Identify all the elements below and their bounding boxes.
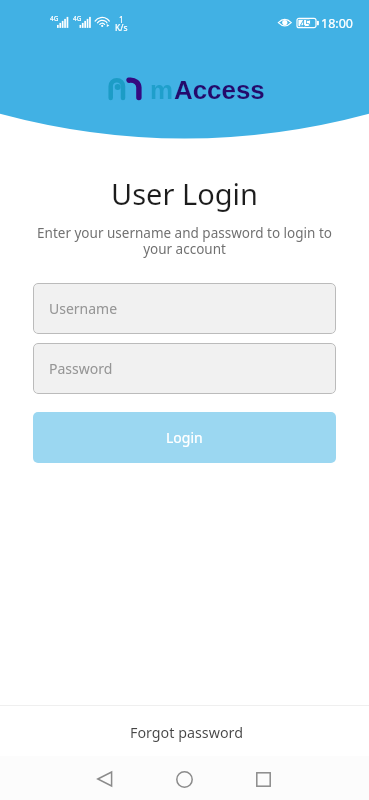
button[interactable]: Login bbox=[33, 412, 336, 463]
staticText: Password bbox=[49, 359, 113, 378]
staticText: m bbox=[150, 76, 174, 105]
staticText: 4G bbox=[50, 14, 59, 23]
staticText: Forgot password bbox=[130, 723, 243, 742]
button[interactable]: Username bbox=[33, 283, 336, 334]
staticText: 1 bbox=[119, 14, 124, 25]
staticText: Access bbox=[174, 76, 265, 105]
staticText: 18:00 bbox=[321, 15, 353, 32]
staticText: Login bbox=[166, 428, 203, 447]
staticText: 4G bbox=[73, 14, 82, 23]
staticText: K/s bbox=[115, 22, 128, 34]
button[interactable]: Home bbox=[164, 759, 204, 799]
button[interactable]: Forgot password bbox=[0, 706, 369, 756]
button[interactable]: Back bbox=[85, 759, 125, 799]
button[interactable]: Recent apps bbox=[243, 759, 283, 799]
staticText: Enter your username and password to logi… bbox=[32, 224, 337, 258]
staticText: Username bbox=[49, 299, 118, 318]
staticText: 45 bbox=[300, 17, 311, 29]
staticText: User Login bbox=[0, 174, 369, 213]
button[interactable]: Password bbox=[33, 343, 336, 394]
